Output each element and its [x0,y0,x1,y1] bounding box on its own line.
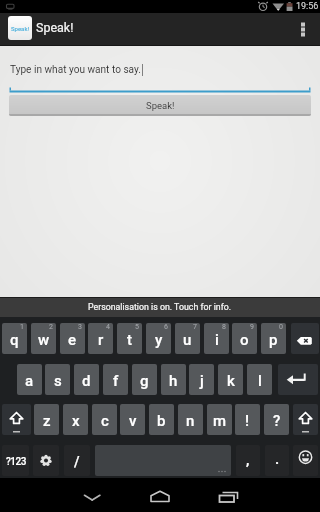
button[interactable]: d [74,364,99,395]
button[interactable]: p [261,323,286,354]
button[interactable]: y [146,323,171,354]
staticText: h [169,372,178,390]
button[interactable]: m [207,404,232,435]
staticText: y [155,331,163,349]
staticText: b [157,412,166,430]
button[interactable]: c [92,404,117,435]
staticText: Speak! [11,25,29,32]
staticText: f [113,372,119,390]
button[interactable]: l [247,364,272,395]
staticText: ?123 [6,456,26,468]
button[interactable]: s [45,364,70,395]
staticText: . [275,450,280,468]
staticText: , [246,451,250,469]
staticText: i [215,331,219,349]
button[interactable]: w [31,323,56,354]
staticText: t [127,331,132,349]
staticText: e [68,331,77,349]
staticText: j [200,372,204,390]
button[interactable]: q [2,323,27,354]
staticText: 9 [250,323,254,331]
staticText: / [74,454,80,470]
button[interactable]: v [120,404,145,435]
button[interactable]: x [63,404,88,435]
button[interactable] [2,404,31,435]
button[interactable]: , [236,445,260,476]
staticText: 0 [279,323,283,331]
button[interactable]: z [34,404,59,435]
staticText: l [258,372,262,390]
button[interactable]: j [189,364,214,395]
button[interactable] [33,445,59,476]
staticText: g [140,372,149,390]
staticText: 2 [49,323,53,331]
button[interactable] [205,478,253,512]
button[interactable] [136,478,184,512]
staticText: a [25,372,34,390]
button[interactable]: k [218,364,243,395]
button[interactable]: t [117,323,142,354]
staticText: o [240,331,249,349]
staticText: q [10,331,19,349]
staticText: m [213,412,227,430]
staticText: u [183,331,192,349]
button[interactable]: r [88,323,113,354]
staticText: 19:56 [296,1,319,12]
staticText: ! [245,412,250,430]
staticText: x [72,412,80,430]
button[interactable]: ?123 [2,445,29,476]
button[interactable]: Personalisation is on. Touch for info. [0,297,320,317]
staticText: v [129,412,137,430]
staticText: 6 [164,323,168,331]
button[interactable]: Speak! [9,95,311,116]
button[interactable]: . [265,445,289,476]
staticText: s [54,372,62,390]
button[interactable] [293,13,320,46]
staticText: Speak! [36,20,74,35]
button[interactable] [291,323,319,354]
staticText: 4 [106,323,110,331]
button[interactable]: o [232,323,257,354]
button[interactable]: / [64,445,90,476]
button[interactable]: u [175,323,200,354]
staticText: ? [273,412,281,430]
button[interactable]: ! [235,404,260,435]
staticText: c [101,412,109,430]
staticText: r [98,331,104,349]
staticText: Speak! [146,100,175,111]
button[interactable]: b [149,404,174,435]
button[interactable]: Type in what you want to say. [0,56,320,92]
button[interactable]: ? [264,404,289,435]
staticText: p [269,331,278,349]
button[interactable]: h [161,364,186,395]
button[interactable]: i [204,323,229,354]
staticText: 7 [193,323,197,331]
button[interactable] [293,445,318,476]
staticText: Type in what you want to say. [10,64,141,76]
button[interactable] [293,404,318,435]
button[interactable]: f [103,364,128,395]
staticText: d [82,372,91,390]
staticText: z [43,412,51,430]
staticText: Personalisation is on. Touch for info. [88,302,232,312]
staticText: 3 [78,323,82,331]
button[interactable] [278,364,318,395]
staticText: 8 [222,323,226,331]
button[interactable] [68,478,116,512]
button[interactable]: n [178,404,203,435]
button[interactable]: e [60,323,85,354]
staticText: n [186,412,195,430]
staticText: k [227,372,235,390]
staticText: w [38,331,50,349]
staticText: 5 [135,323,139,331]
button[interactable]: g [132,364,157,395]
button[interactable]: a [17,364,42,395]
staticText: 1 [20,323,24,331]
